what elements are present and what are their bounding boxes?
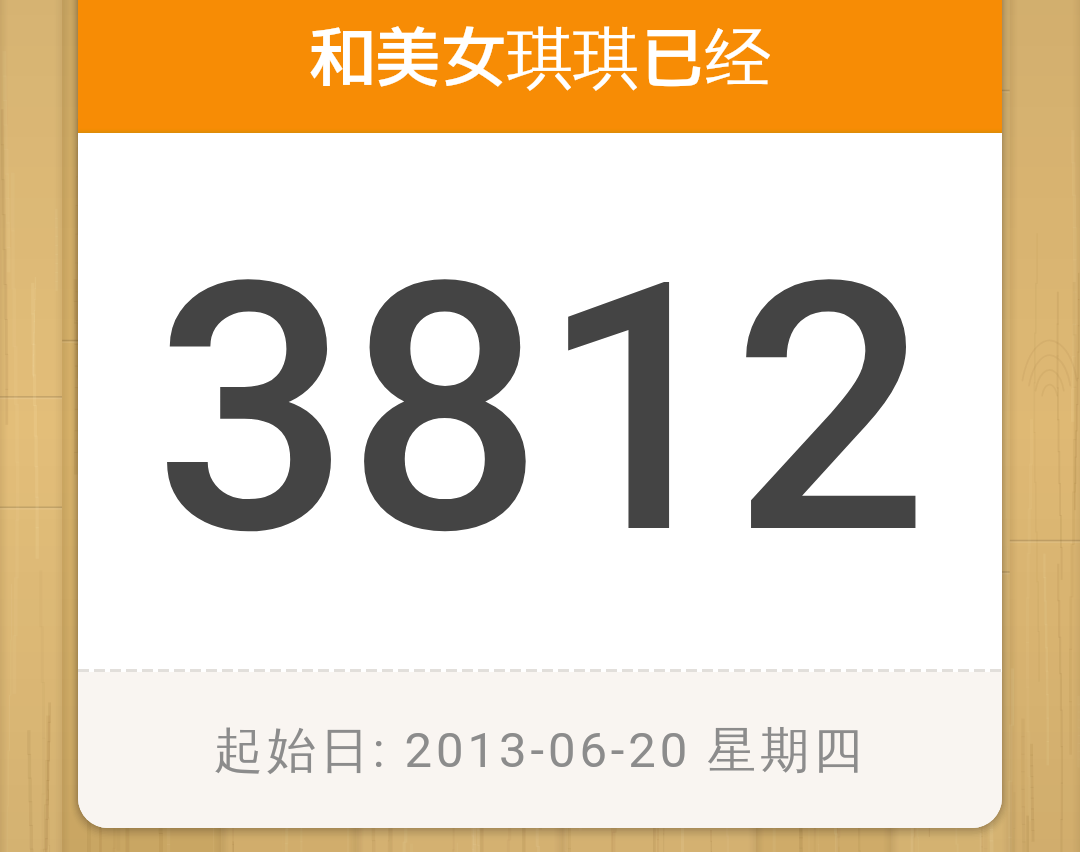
button[interactable]: 和美女琪琪已经	[78, 0, 1002, 828]
staticText: 3812	[154, 208, 926, 612]
staticText: 起始日: 2013-06-20 星期四	[214, 720, 867, 782]
staticText: 和美女琪琪已经	[309, 10, 771, 102]
